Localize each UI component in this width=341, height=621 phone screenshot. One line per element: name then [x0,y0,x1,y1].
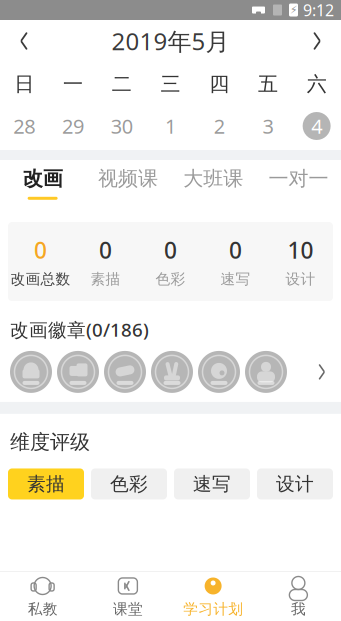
button[interactable]: 学习计划 [170,572,256,621]
button[interactable]: 下个月 [293,20,341,62]
staticText: 2 [214,113,225,139]
staticText: 学习计划 [183,600,243,618]
staticText: 三 [160,72,180,96]
staticText: 私教 [28,600,58,618]
button[interactable]: 3 [244,106,292,146]
staticText: 素描 [27,472,65,495]
staticText: 0 [164,235,177,265]
button[interactable]: 30 [97,106,146,146]
staticText: 二 [112,72,132,96]
staticText: 大班课 [183,166,243,191]
button[interactable]: 视频课 [85,160,170,206]
button[interactable]: 上个月 [0,20,48,62]
staticText: 一 [63,72,83,96]
staticText: 28 [13,113,35,139]
staticText: ⚡︎ [290,4,297,16]
staticText: 四 [209,72,229,96]
staticText: 10 [287,235,313,265]
staticText: 一对一 [268,166,328,191]
staticText: 1 [165,113,176,139]
staticText: 9:12 [303,0,334,21]
staticText: 素描 [90,270,120,288]
button[interactable]: 一对一 [256,160,341,206]
button[interactable]: 我 [256,572,341,621]
staticText: 2019年5月 [111,25,229,57]
staticText: 4 [311,113,322,139]
staticText: 色彩 [110,472,148,495]
button[interactable]: 课堂 [85,572,170,621]
staticText: 3 [262,113,273,139]
staticText: 0 [34,235,47,265]
staticText: 改画徽章(0/186) [10,317,149,342]
button[interactable]: 速写 [174,468,250,499]
staticText: 我 [291,600,306,618]
staticText: 29 [62,113,84,139]
staticText: 视频课 [98,166,158,191]
staticText: 0 [229,235,242,265]
staticText: 30 [111,113,133,139]
staticText: 设计 [285,270,315,288]
staticText: 课堂 [113,600,143,618]
staticText: 色彩 [155,270,185,288]
button[interactable]: 2 [195,106,244,146]
button[interactable]: 设计 [257,468,333,499]
button[interactable]: 大班课 [170,160,256,206]
staticText: 维度评级 [10,430,90,454]
staticText: 设计 [276,472,314,495]
button[interactable]: 查看全部徽章 [0,342,341,402]
button[interactable]: 素描 [8,468,84,499]
staticText: 日 [14,72,34,96]
button[interactable]: 4 [292,106,341,146]
button[interactable]: 28 [0,106,49,146]
staticText: 五 [258,72,278,96]
button[interactable]: 29 [49,106,97,146]
button[interactable]: 私教 [0,572,85,621]
button[interactable]: 1 [146,106,195,146]
staticText: 速写 [220,270,250,288]
button[interactable]: 色彩 [91,468,167,499]
staticText: 0 [99,235,112,265]
staticText: 六 [307,72,327,96]
staticText: 速写 [193,472,231,495]
button[interactable]: 改画 [0,160,85,206]
staticText: 改画总数 [10,270,70,288]
staticText: 改画 [23,166,63,191]
